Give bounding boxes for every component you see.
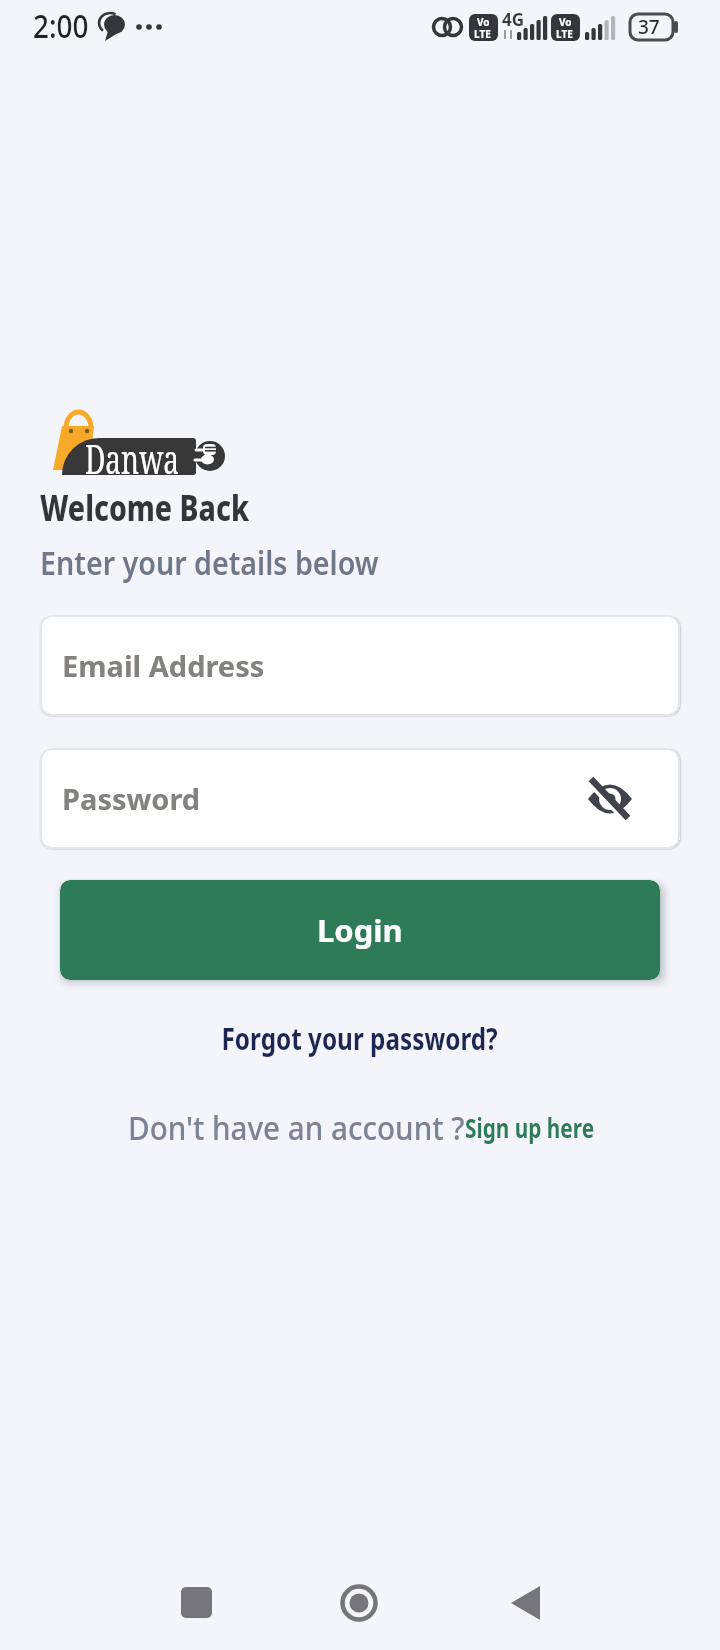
staticText: Welcome Back bbox=[40, 483, 249, 532]
button[interactable]: Forgot your password? bbox=[0, 1018, 720, 1059]
button[interactable] bbox=[500, 1577, 552, 1629]
staticText: 37 bbox=[638, 14, 660, 40]
staticText: Forgot your password? bbox=[221, 1018, 498, 1059]
staticText: Enter your details below bbox=[40, 540, 379, 585]
button[interactable]: Sign up here bbox=[465, 1110, 627, 1145]
staticText: Don't have an account ? bbox=[128, 1106, 465, 1150]
button[interactable]: Email Address bbox=[40, 615, 680, 716]
staticText: Email Address bbox=[62, 646, 265, 685]
button[interactable]: Login bbox=[60, 880, 660, 980]
staticText: Sign up here bbox=[465, 1110, 595, 1145]
button[interactable] bbox=[333, 1577, 385, 1629]
button[interactable] bbox=[580, 770, 640, 830]
button[interactable]: Password bbox=[40, 748, 680, 849]
staticText: Login bbox=[317, 909, 403, 951]
staticText: 2:00 bbox=[33, 4, 89, 48]
button[interactable] bbox=[170, 1577, 222, 1629]
staticText: Vo bbox=[477, 15, 490, 29]
staticText: LTE bbox=[556, 27, 573, 41]
staticText: Danwa bbox=[85, 431, 179, 485]
staticText: LTE bbox=[474, 27, 491, 41]
staticText: 4G bbox=[502, 8, 525, 31]
staticText: Vo bbox=[559, 15, 572, 29]
staticText: Password bbox=[62, 779, 201, 818]
